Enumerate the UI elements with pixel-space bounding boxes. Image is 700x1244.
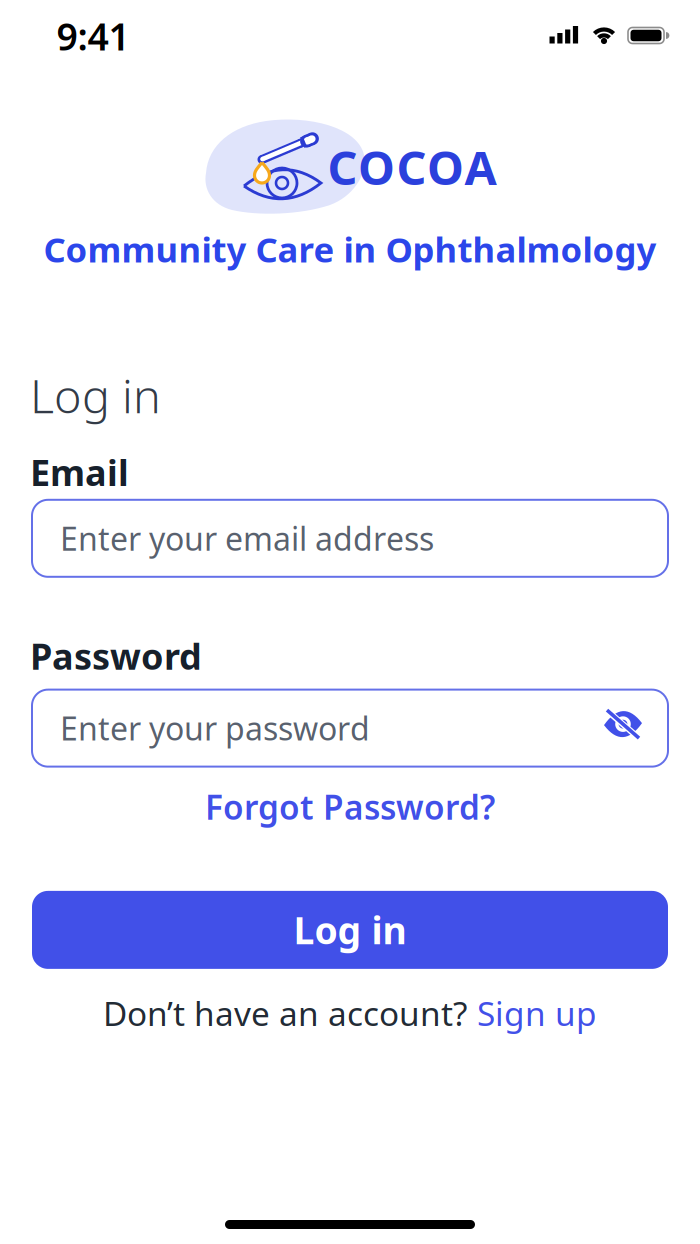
- button[interactable]: Show password: [602, 710, 646, 746]
- staticText: Enter your email address: [60, 517, 434, 560]
- staticText: Sign up: [477, 991, 597, 1035]
- staticText: COCOA: [327, 136, 496, 198]
- button[interactable]: Forgot Password?: [205, 785, 495, 829]
- staticText: Don’t have an account?: [103, 991, 467, 1035]
- button[interactable]: Log in: [32, 891, 668, 969]
- staticText: Log in: [30, 364, 161, 426]
- button[interactable]: Sign up: [477, 991, 597, 1035]
- button[interactable]: Enter your password: [32, 690, 668, 767]
- staticText: Log in: [293, 905, 406, 955]
- button[interactable]: Enter your email address: [32, 500, 668, 577]
- staticText: Email: [30, 448, 129, 496]
- staticText: Enter your password: [60, 707, 370, 749]
- staticText: Forgot Password?: [205, 785, 495, 829]
- staticText: 9:41: [56, 11, 129, 61]
- staticText: Community Care in Ophthalmology: [43, 226, 656, 272]
- staticText: Password: [30, 632, 202, 680]
